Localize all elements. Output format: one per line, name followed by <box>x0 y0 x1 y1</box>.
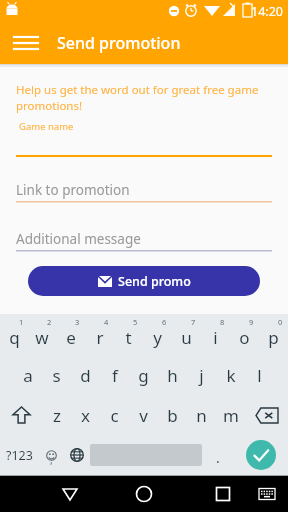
staticText: t <box>125 326 132 349</box>
staticText: Help us get the word out for great free … <box>16 82 272 113</box>
button[interactable]: Hide keyboard <box>254 481 280 507</box>
button[interactable]: Shift <box>0 395 42 435</box>
button[interactable]: Link to promotion <box>16 179 272 201</box>
button[interactable]: k <box>216 355 245 395</box>
button[interactable]: g <box>129 355 158 395</box>
staticText: j <box>199 364 204 387</box>
button[interactable]: Backspace <box>245 395 288 435</box>
staticText: f <box>112 364 118 387</box>
staticText: d <box>80 364 91 387</box>
button[interactable]: ?123 <box>0 435 39 475</box>
button[interactable]: j <box>187 355 216 395</box>
button[interactable]: p <box>259 314 288 355</box>
button[interactable]: e <box>56 314 85 355</box>
staticText: 5 <box>133 317 138 327</box>
button[interactable]: z <box>42 395 71 435</box>
staticText: 7 <box>191 317 196 327</box>
staticText: q <box>9 326 20 349</box>
staticText: 1 <box>19 317 24 327</box>
staticText: Link to promotion <box>16 181 130 199</box>
button[interactable]: y <box>143 314 172 355</box>
button[interactable]: h <box>158 355 187 395</box>
staticText: 2 <box>47 317 52 327</box>
staticText: a <box>23 364 33 387</box>
button[interactable]: d <box>71 355 100 395</box>
staticText: k <box>226 364 236 387</box>
staticText: x <box>81 404 90 427</box>
staticText: . <box>216 448 220 467</box>
staticText: w <box>35 326 49 349</box>
button[interactable]: Additional message <box>16 228 272 250</box>
button[interactable]: Recent apps <box>208 479 238 509</box>
staticText: 3 <box>75 317 80 327</box>
staticText: m <box>223 404 239 427</box>
staticText: h <box>167 364 178 387</box>
staticText: v <box>139 404 148 427</box>
staticText: e <box>66 326 76 349</box>
staticText: c <box>110 404 119 427</box>
staticText: u <box>181 326 192 349</box>
button[interactable]: l <box>245 355 274 395</box>
button[interactable]: Change language <box>63 435 90 475</box>
staticText: g <box>138 364 149 387</box>
button[interactable]: v <box>129 395 158 435</box>
button[interactable]: . <box>202 435 234 475</box>
staticText: Send promotion <box>57 32 181 54</box>
button[interactable]: a <box>13 355 42 395</box>
staticText: Additional message <box>16 230 141 248</box>
staticText: p <box>268 326 279 349</box>
button[interactable]: o <box>230 314 259 355</box>
button[interactable]: n <box>187 395 216 435</box>
button[interactable]: m <box>216 395 245 435</box>
button[interactable]: Done <box>234 435 288 475</box>
button[interactable]: b <box>158 395 187 435</box>
staticText: z <box>53 404 61 427</box>
staticText: 0 <box>278 317 283 327</box>
staticText: 14:20 <box>251 3 283 20</box>
staticText: Game name <box>19 120 74 133</box>
staticText: r <box>96 326 104 349</box>
staticText: i <box>213 326 218 349</box>
staticText: y <box>153 326 162 349</box>
staticText: l <box>257 364 262 387</box>
staticText: 4 <box>104 317 109 327</box>
button[interactable]: x <box>71 395 100 435</box>
staticText: b <box>167 404 178 427</box>
button[interactable]: r <box>85 314 114 355</box>
button[interactable]: c <box>100 395 129 435</box>
button[interactable]: t <box>114 314 143 355</box>
button[interactable]: Open navigation menu <box>10 27 42 59</box>
staticText: ?123 <box>6 447 33 464</box>
staticText: Send promo <box>118 273 191 290</box>
button[interactable]: q <box>0 314 28 355</box>
staticText: 8 <box>220 317 225 327</box>
staticText: 9 <box>249 317 254 327</box>
staticText: n <box>196 404 207 427</box>
button[interactable]: w <box>28 314 56 355</box>
button[interactable]: u <box>172 314 201 355</box>
staticText: s <box>52 364 61 387</box>
staticText: o <box>239 326 250 349</box>
staticText: , <box>50 453 53 467</box>
button[interactable]: Emoji <box>39 435 63 475</box>
button[interactable]: Send promo <box>28 266 260 296</box>
button[interactable]: s <box>42 355 71 395</box>
staticText: 6 <box>162 317 167 327</box>
button[interactable]: f <box>100 355 129 395</box>
button[interactable]: Back <box>55 479 85 509</box>
button[interactable]: Home <box>129 479 159 509</box>
button[interactable]: i <box>201 314 230 355</box>
